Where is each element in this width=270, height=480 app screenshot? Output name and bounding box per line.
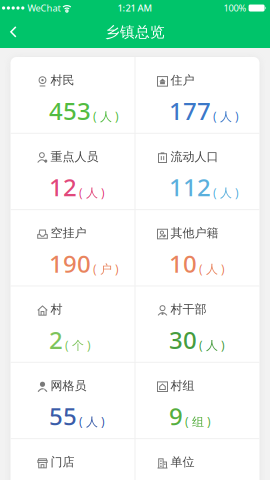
staticText: ( 人 )	[199, 261, 225, 277]
staticText: ( 人 )	[213, 108, 239, 124]
button[interactable]: Back	[0, 20, 17, 44]
staticText: 12	[49, 171, 77, 203]
button[interactable]: 村	[10, 286, 135, 362]
staticText: 村组	[170, 378, 194, 393]
staticText: 村干部	[170, 302, 206, 317]
button[interactable]: 住户	[135, 57, 259, 133]
button[interactable]: 门店	[10, 439, 135, 480]
staticText: 2	[49, 324, 63, 356]
button[interactable]: 村干部	[135, 286, 259, 362]
staticText: 其他户籍	[170, 226, 218, 240]
staticText: WeChat	[27, 2, 60, 14]
staticText: ( 人 )	[199, 337, 225, 353]
staticText: 空挂户	[50, 226, 86, 240]
staticText: 112	[169, 171, 211, 203]
button[interactable]: 流动人口	[135, 133, 259, 210]
staticText: 重点人员	[50, 149, 98, 164]
staticText: ( 人 )	[93, 108, 119, 124]
staticText: 100%	[224, 2, 247, 14]
button[interactable]: 其他户籍	[135, 210, 259, 286]
staticText: 30	[169, 324, 197, 356]
button[interactable]: 村组	[135, 362, 259, 439]
staticText: 村	[50, 302, 62, 317]
staticText: 453	[49, 95, 91, 127]
staticText: ( 组 )	[185, 413, 211, 429]
staticText: 乡镇总览	[105, 23, 165, 41]
staticText: 住户	[170, 73, 194, 88]
staticText: 1:21 AM	[117, 2, 152, 14]
staticText: ( 人 )	[79, 184, 105, 200]
button[interactable]: 村民	[10, 57, 135, 133]
staticText: 177	[169, 95, 211, 127]
staticText: 10	[169, 247, 197, 279]
staticText: ( 人 )	[79, 413, 105, 429]
button[interactable]: 单位	[135, 439, 259, 480]
staticText: 单位	[170, 455, 194, 469]
staticText: ( 人 )	[213, 184, 239, 200]
staticText: 190	[49, 247, 91, 279]
button[interactable]: 空挂户	[10, 210, 135, 286]
staticText: 门店	[50, 455, 74, 469]
button[interactable]: 网格员	[10, 362, 135, 439]
staticText: 9	[169, 400, 183, 432]
staticText: ( 个 )	[65, 337, 91, 353]
button[interactable]: 重点人员	[10, 133, 135, 210]
staticText: 流动人口	[170, 149, 218, 164]
staticText: 网格员	[50, 378, 86, 393]
staticText: 55	[49, 400, 77, 432]
staticText: 村民	[50, 73, 74, 88]
staticText: ( 户 )	[93, 261, 119, 277]
